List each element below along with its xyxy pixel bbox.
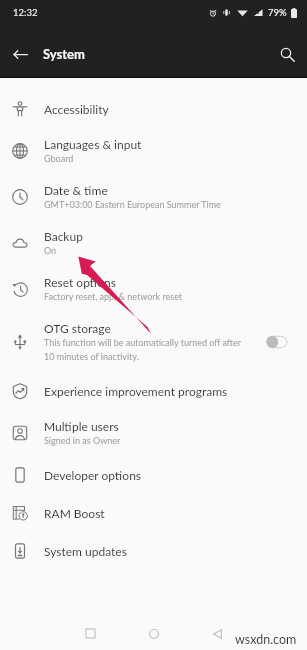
button[interactable]: Recents (78, 626, 102, 641)
staticText: 10 minutes of inactivity. (44, 349, 139, 363)
staticText: 79% (268, 7, 287, 18)
staticText: 12:32 (13, 7, 38, 18)
staticText: Factory reset, app, & network reset (44, 289, 183, 303)
button[interactable]: Backup (0, 220, 307, 266)
button[interactable]: Developer options (0, 456, 307, 494)
button[interactable]: Experience improvement programs (0, 372, 307, 410)
staticText: Backup (44, 229, 83, 243)
staticText: On (44, 243, 57, 257)
staticText: Developer options (44, 468, 142, 482)
button[interactable]: Toggle OTG storage (265, 333, 287, 351)
button[interactable]: Back (205, 626, 229, 641)
button[interactable]: RAM Boost (0, 494, 307, 532)
button[interactable]: Accessibility (0, 90, 307, 128)
staticText: RAM Boost (44, 506, 105, 520)
button[interactable]: Back (4, 38, 36, 70)
staticText: Date & time (44, 183, 108, 197)
staticText: Signed in as Owner (44, 433, 121, 447)
staticText: Multiple users (44, 419, 119, 433)
staticText: Reset options (44, 275, 116, 289)
button[interactable]: Reset options (0, 266, 307, 312)
staticText: System updates (44, 544, 127, 558)
button[interactable]: Home (142, 626, 166, 641)
staticText: Gboard (44, 151, 74, 165)
button[interactable]: Search (271, 38, 303, 70)
staticText: Experience improvement programs (44, 384, 228, 398)
button[interactable]: OTG storage (0, 312, 307, 372)
button[interactable]: Multiple users (0, 410, 307, 456)
staticText: OTG storage (44, 321, 111, 335)
staticText: Languages & input (44, 137, 142, 151)
staticText: wsxdn.com (235, 632, 297, 647)
button[interactable]: Date & time (0, 174, 307, 220)
staticText: GMT+03:00 Eastern European Summer Time (44, 197, 221, 211)
staticText: This function will be automatically turn… (44, 335, 242, 349)
staticText: Accessibility (44, 102, 109, 116)
button[interactable]: Languages & input (0, 128, 307, 174)
button[interactable]: System updates (0, 532, 307, 570)
staticText: System (43, 46, 85, 62)
